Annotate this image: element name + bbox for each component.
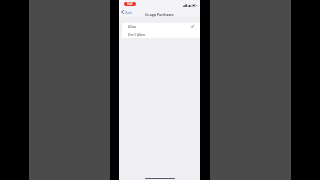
button[interactable]: Don't Allow: [122, 31, 200, 38]
staticText: In-app Purchases: [145, 12, 174, 17]
staticText: Don't Allow: [128, 33, 145, 37]
button[interactable]: Back: [121, 10, 133, 14]
staticText: 9:41: [127, 2, 133, 6]
other: Back: [121, 10, 124, 14]
other: Selected: [191, 25, 194, 28]
staticText: Back: [125, 10, 133, 14]
button[interactable]: Allow: [122, 23, 200, 31]
staticText: Allow: [128, 25, 137, 29]
